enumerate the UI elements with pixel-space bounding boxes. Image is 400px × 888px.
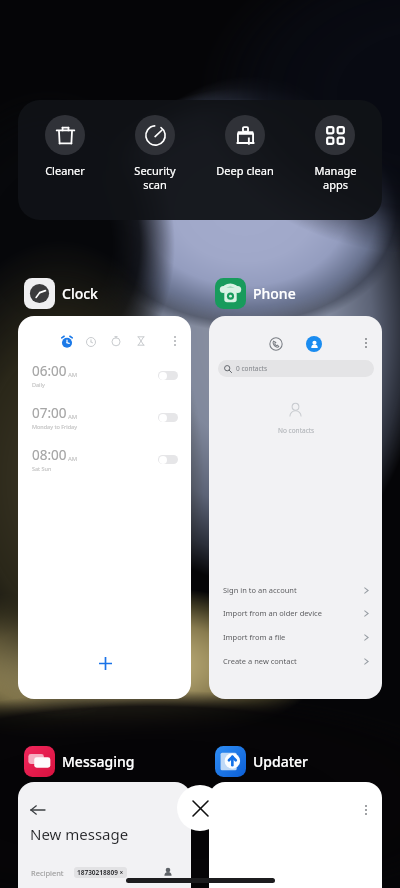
staticText: Deep clean bbox=[216, 163, 274, 178]
button[interactable]: Sign in to an account bbox=[223, 579, 370, 601]
button[interactable]: 06:00 bbox=[32, 360, 178, 390]
button[interactable]: 0 contacts bbox=[218, 360, 374, 377]
staticText: AM bbox=[68, 371, 78, 379]
staticText: Monday to Friday bbox=[32, 423, 77, 430]
button[interactable]: Create a new contact bbox=[223, 650, 370, 672]
staticText: 0 contacts bbox=[236, 364, 268, 373]
button[interactable]: Cleaner bbox=[22, 100, 108, 220]
staticText: Sat Sun bbox=[32, 465, 52, 472]
button[interactable]: Back bbox=[30, 802, 46, 818]
staticText: Daily bbox=[32, 381, 45, 388]
button[interactable]: Security scan bbox=[112, 100, 198, 220]
staticText: Import from an older device bbox=[223, 608, 322, 618]
button[interactable]: Close bbox=[177, 785, 223, 831]
button[interactable]: Back bbox=[18, 782, 191, 888]
button[interactable]: 08:00 bbox=[32, 444, 178, 474]
button[interactable]: More options bbox=[168, 334, 182, 348]
button[interactable] bbox=[158, 413, 178, 422]
staticText: 06:00 bbox=[32, 362, 67, 380]
staticText: Phone bbox=[253, 284, 296, 303]
staticText: Clock bbox=[62, 284, 98, 303]
staticText: No contacts bbox=[278, 426, 315, 435]
button[interactable]: Add alarm bbox=[97, 655, 113, 671]
button[interactable]: More options bbox=[18, 316, 191, 699]
staticText: 07:00 bbox=[32, 404, 67, 422]
button[interactable]: More options bbox=[359, 803, 373, 817]
button[interactable]: Manage apps bbox=[292, 100, 378, 220]
staticText: Cleaner bbox=[45, 163, 85, 178]
staticText: Sign in to an account bbox=[223, 585, 297, 595]
button[interactable]: Messaging bbox=[24, 745, 135, 777]
staticText: Messaging bbox=[62, 752, 135, 771]
staticText: 18730218809 × bbox=[77, 868, 124, 877]
button[interactable]: Updater bbox=[215, 745, 309, 777]
button[interactable]: Import from a file bbox=[223, 626, 370, 648]
staticText: Create a new contact bbox=[223, 656, 297, 666]
staticText: Manage apps bbox=[314, 163, 357, 192]
staticText: 08:00 bbox=[32, 446, 67, 464]
button[interactable]: Deep clean bbox=[202, 100, 288, 220]
staticText: Security scan bbox=[134, 163, 176, 192]
button[interactable] bbox=[158, 371, 178, 380]
button[interactable]: More options bbox=[209, 316, 382, 699]
button[interactable]: More options bbox=[209, 782, 382, 888]
button[interactable]: More options bbox=[359, 336, 373, 350]
button[interactable]: Phone bbox=[215, 277, 296, 309]
staticText: New message bbox=[30, 824, 129, 844]
staticText: Import from a file bbox=[223, 632, 286, 642]
staticText: Updater bbox=[253, 752, 309, 771]
staticText: AM bbox=[68, 413, 78, 421]
staticText: AM bbox=[68, 455, 78, 463]
button[interactable]: Clock bbox=[24, 277, 98, 309]
button[interactable] bbox=[158, 455, 178, 464]
staticText: Recipient bbox=[31, 868, 64, 878]
button[interactable]: Import from an older device bbox=[223, 602, 370, 624]
button[interactable]: 07:00 bbox=[32, 402, 178, 432]
